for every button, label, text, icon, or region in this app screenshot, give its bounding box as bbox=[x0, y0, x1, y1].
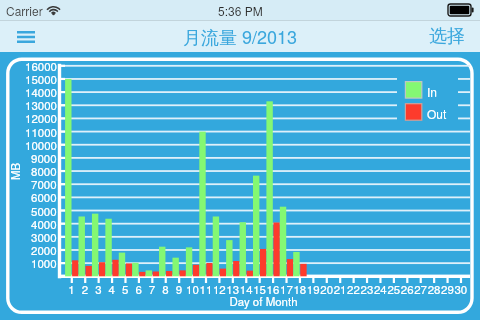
staticText: 5:36 PM bbox=[218, 2, 263, 19]
staticText: Carrier bbox=[6, 2, 43, 19]
button[interactable]: 选择 bbox=[421, 22, 473, 51]
button[interactable]: Menu bbox=[0, 20, 46, 52]
staticText: 月流量 9/2013 bbox=[183, 23, 298, 49]
staticText: 选择 bbox=[429, 25, 465, 48]
